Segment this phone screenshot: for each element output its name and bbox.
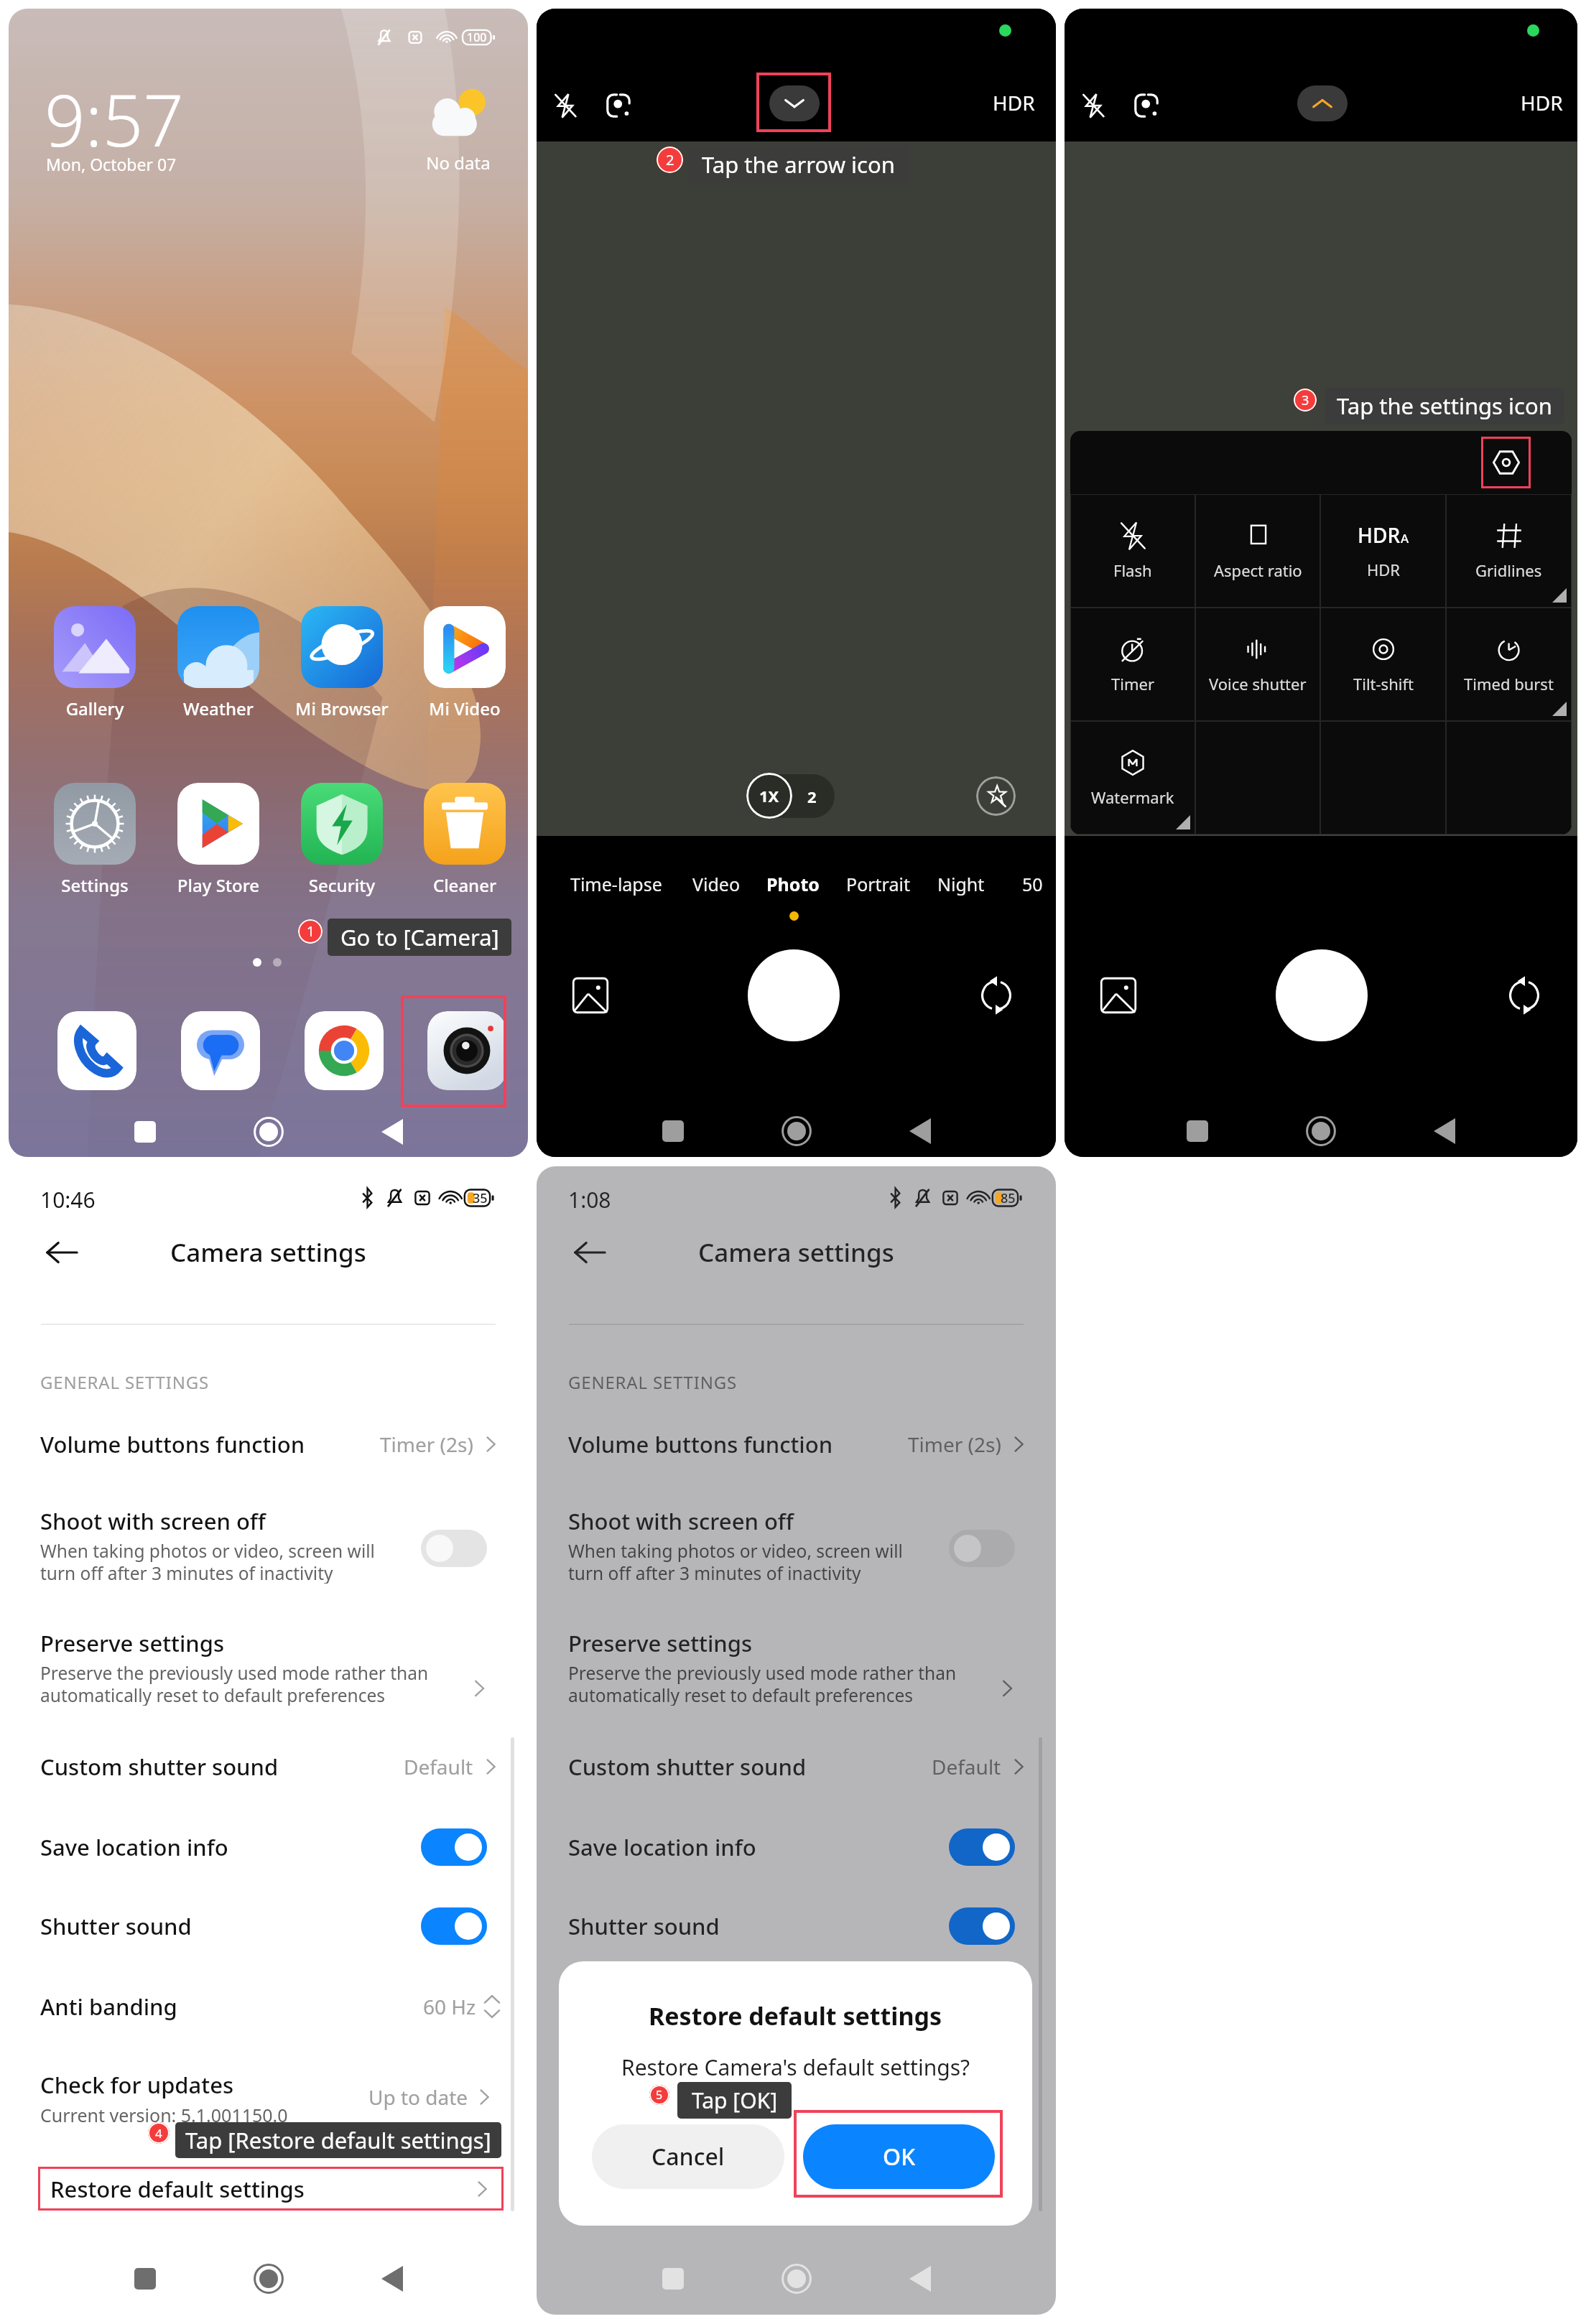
- staticText: Mi Browser: [288, 697, 396, 720]
- button[interactable]: HDR: [983, 83, 1044, 122]
- button[interactable]: [9, 1495, 528, 1589]
- button[interactable]: [949, 1828, 1015, 1866]
- button[interactable]: 50: [982, 866, 1056, 902]
- button[interactable]: Save location info: [537, 1821, 1056, 1873]
- button[interactable]: Home: [759, 1107, 835, 1155]
- button[interactable]: HDR: [1320, 494, 1446, 608]
- button[interactable]: Gallery: [41, 606, 149, 721]
- button[interactable]: OK: [803, 2124, 995, 2189]
- button[interactable]: Back: [354, 2255, 430, 2302]
- staticText: Preserve the previously used mode rather…: [40, 1661, 429, 1706]
- button[interactable]: Custom shutter sound: [9, 1741, 528, 1793]
- button[interactable]: Shutter sound: [9, 1900, 528, 1952]
- button[interactable]: Back: [1406, 1107, 1483, 1155]
- button[interactable]: Photo: [743, 866, 843, 902]
- staticText: Timer (2s): [908, 1431, 1001, 1458]
- button[interactable]: [421, 1530, 487, 1567]
- button[interactable]: Cleaner: [411, 783, 519, 898]
- button[interactable]: [949, 1530, 1015, 1567]
- button[interactable]: Recents: [107, 2255, 183, 2302]
- button[interactable]: [1195, 721, 1320, 835]
- button[interactable]: Switch camera: [1504, 975, 1544, 1015]
- button[interactable]: Gridlines: [1446, 494, 1572, 608]
- button[interactable]: HDR: [1511, 83, 1572, 122]
- button[interactable]: Night: [911, 866, 1011, 902]
- button[interactable]: Back: [354, 1108, 430, 1156]
- button[interactable]: Flash off: [544, 84, 587, 127]
- staticText: Timer: [1111, 673, 1154, 694]
- button[interactable]: [9, 1617, 528, 1711]
- button[interactable]: Home: [231, 1108, 307, 1156]
- button[interactable]: Filters: [976, 776, 1016, 816]
- staticText: 85: [1001, 1189, 1016, 1207]
- button[interactable]: Settings: [1481, 437, 1531, 488]
- staticText: Current version: 5.1.001150.0: [40, 2103, 288, 2127]
- button[interactable]: Mi Browser: [288, 606, 396, 721]
- button[interactable]: 2: [797, 782, 826, 811]
- button[interactable]: Gallery: [570, 975, 611, 1015]
- button[interactable]: Flash: [1070, 494, 1195, 608]
- button[interactable]: Phone: [57, 1011, 136, 1090]
- button[interactable]: Shutter sound: [537, 1900, 1056, 1952]
- button[interactable]: Cancel: [592, 2124, 784, 2189]
- button[interactable]: Recents: [635, 1107, 711, 1155]
- button[interactable]: Switch camera: [976, 975, 1016, 1015]
- button[interactable]: Play Store: [164, 783, 272, 898]
- button[interactable]: Weather: [164, 606, 272, 721]
- button[interactable]: Back: [882, 1107, 958, 1155]
- button[interactable]: Collapse settings: [1297, 85, 1348, 121]
- button[interactable]: Recents: [1159, 1107, 1235, 1155]
- button[interactable]: Back: [564, 1227, 616, 1278]
- button[interactable]: Shutter: [1276, 949, 1368, 1041]
- button[interactable]: Volume buttons function: [9, 1418, 528, 1470]
- button[interactable]: Volume buttons function: [537, 1418, 1056, 1470]
- button[interactable]: Settings: [41, 783, 149, 898]
- button[interactable]: [537, 1617, 1056, 1711]
- button[interactable]: Portrait: [827, 866, 928, 902]
- button[interactable]: Watermark: [1070, 721, 1195, 835]
- staticText: Tap [Restore default settings]: [185, 2125, 491, 2155]
- button[interactable]: Google Lens: [597, 84, 640, 127]
- button[interactable]: Video: [666, 866, 766, 902]
- staticText: GENERAL SETTINGS: [568, 1370, 737, 1394]
- button[interactable]: 1X: [746, 773, 792, 819]
- button[interactable]: Home: [1283, 1107, 1359, 1155]
- button[interactable]: Voice shutter: [1195, 608, 1320, 721]
- staticText: Video: [692, 872, 741, 896]
- button[interactable]: Restore default settings: [38, 2167, 504, 2211]
- button[interactable]: Chrome: [305, 1011, 384, 1090]
- button[interactable]: Home: [231, 2255, 307, 2302]
- button[interactable]: Mi Video: [411, 606, 519, 721]
- button[interactable]: Timed burst: [1446, 608, 1572, 721]
- button[interactable]: [9, 2063, 528, 2144]
- staticText: Mon, October 07: [46, 153, 177, 175]
- button[interactable]: Back: [36, 1227, 88, 1278]
- button[interactable]: Gallery: [1098, 975, 1139, 1015]
- button[interactable]: [421, 1907, 487, 1945]
- button[interactable]: Flash off: [1072, 84, 1115, 127]
- button[interactable]: Google Lens: [1125, 84, 1168, 127]
- button[interactable]: [1446, 721, 1572, 835]
- staticText: 100: [467, 29, 487, 45]
- button[interactable]: [949, 1907, 1015, 1945]
- button[interactable]: Back: [882, 2255, 958, 2302]
- button[interactable]: Save location info: [9, 1821, 528, 1873]
- button[interactable]: Tilt-shift: [1320, 608, 1446, 721]
- button[interactable]: Messages: [181, 1011, 260, 1090]
- button[interactable]: Time-lapse: [566, 866, 667, 902]
- button[interactable]: Expand settings: [769, 85, 820, 121]
- button[interactable]: Aspect ratio: [1195, 494, 1320, 608]
- button[interactable]: Recents: [107, 1108, 183, 1156]
- button[interactable]: [421, 1828, 487, 1866]
- button[interactable]: Camera: [427, 1011, 506, 1090]
- button[interactable]: Anti banding: [9, 1981, 528, 2032]
- button[interactable]: Home: [759, 2255, 835, 2302]
- button[interactable]: Timer: [1070, 608, 1195, 721]
- button[interactable]: Shutter: [748, 949, 840, 1041]
- button[interactable]: Security: [288, 783, 396, 898]
- button[interactable]: Recents: [635, 2255, 711, 2302]
- button[interactable]: [1320, 721, 1446, 835]
- button[interactable]: Custom shutter sound: [537, 1741, 1056, 1793]
- button[interactable]: [537, 1495, 1056, 1589]
- staticText: Cancel: [651, 2141, 725, 2172]
